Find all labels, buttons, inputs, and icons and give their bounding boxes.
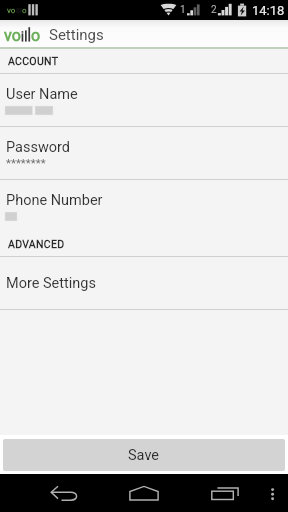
button[interactable]: More Settings xyxy=(0,257,288,309)
staticText: vo xyxy=(7,6,16,15)
staticText: vo xyxy=(4,26,21,43)
staticText: Settings xyxy=(49,26,104,44)
staticText: 14:18 xyxy=(252,3,285,18)
staticText: Password xyxy=(6,139,71,156)
staticText: o xyxy=(22,6,27,15)
staticText: ADVANCED xyxy=(8,238,65,250)
staticText: Save xyxy=(128,447,160,464)
staticText: Phone Number xyxy=(6,192,103,209)
button[interactable]: More options xyxy=(243,474,288,512)
button[interactable]: Home xyxy=(104,474,185,512)
staticText: User Name xyxy=(6,86,78,103)
staticText: ill xyxy=(16,6,22,15)
button[interactable]: Save xyxy=(3,439,285,471)
button[interactable]: User Name xyxy=(0,74,288,126)
button[interactable]: Back xyxy=(0,474,104,512)
staticText: 2 xyxy=(211,4,217,16)
staticText: More Settings xyxy=(6,275,96,292)
staticText: 1 xyxy=(180,4,186,16)
button[interactable]: Recent apps xyxy=(185,474,243,512)
staticText: o xyxy=(31,26,41,43)
staticText: ******** xyxy=(6,156,46,169)
button[interactable]: Password xyxy=(0,127,288,179)
staticText: ACCOUNT xyxy=(8,55,59,67)
button[interactable]: Phone Number xyxy=(0,180,288,232)
